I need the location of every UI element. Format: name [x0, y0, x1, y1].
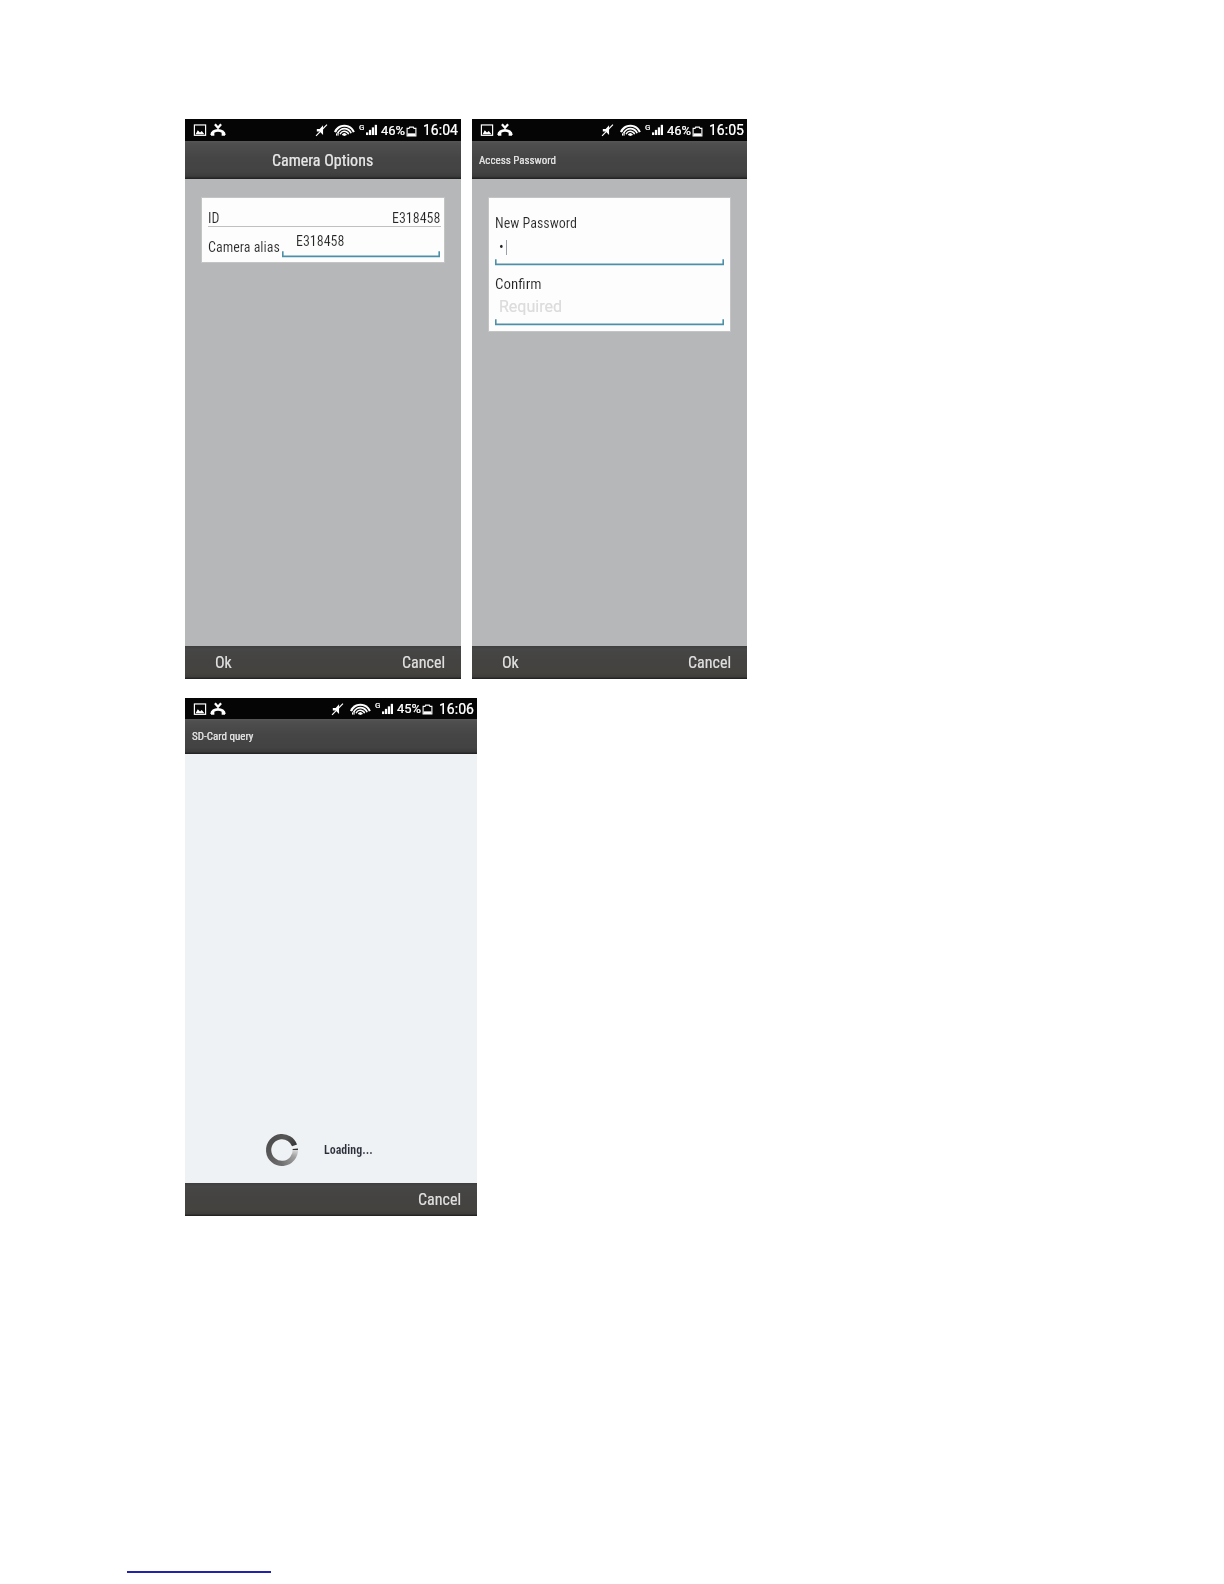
staticText: Cancel — [402, 653, 446, 672]
staticText: Cancel — [418, 1190, 462, 1209]
staticText: Camera alias — [208, 239, 280, 255]
staticText: 16:05 — [709, 122, 744, 138]
staticText: ID — [208, 210, 220, 226]
staticText: E318458 — [296, 233, 345, 249]
staticText: Ok — [215, 653, 232, 672]
staticText: Confirm — [495, 275, 542, 293]
staticText: G — [359, 123, 365, 132]
staticText: Required — [499, 297, 562, 316]
staticText: Access Password — [479, 154, 556, 167]
button[interactable]: ID — [208, 197, 441, 226]
staticText: Ok — [502, 653, 519, 672]
button[interactable]: Cancel — [331, 1183, 477, 1216]
staticText: 46% — [381, 123, 406, 138]
button[interactable]: Cancel — [323, 646, 461, 679]
staticText: SD-Card query — [192, 730, 254, 743]
staticText: 45% — [397, 701, 422, 716]
button[interactable]: Cancel — [609, 646, 747, 679]
staticText: G — [375, 701, 381, 710]
staticText: 16:06 — [439, 701, 474, 717]
button[interactable]: Camera alias — [208, 227, 440, 263]
staticText: G — [645, 123, 651, 132]
button[interactable]: Ok — [472, 646, 609, 679]
staticText: Cancel — [688, 653, 732, 672]
staticText: 16:04 — [423, 122, 458, 138]
staticText: 46% — [667, 123, 692, 138]
staticText: E318458 — [392, 210, 441, 226]
staticText: • — [499, 239, 504, 255]
staticText: New Password — [495, 215, 577, 231]
other: Loading spinner — [266, 1134, 298, 1166]
button[interactable]: Ok — [185, 646, 323, 679]
staticText: Camera Options — [272, 151, 374, 170]
staticText: Loading... — [324, 1143, 373, 1157]
